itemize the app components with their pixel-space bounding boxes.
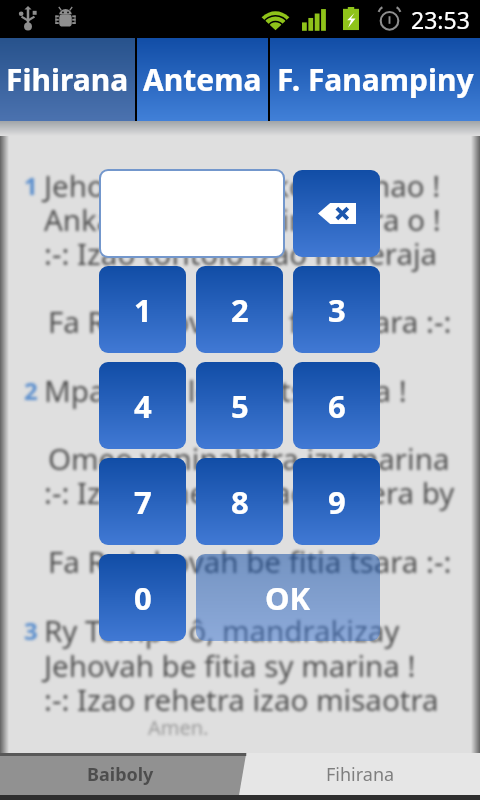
staticText: 6 <box>328 385 346 427</box>
staticText: Baiboly <box>87 762 154 787</box>
button[interactable]: 3 <box>293 266 380 353</box>
button[interactable]: 4 <box>99 362 186 449</box>
button[interactable]: 5 <box>196 362 283 449</box>
staticText: 4 <box>134 385 152 427</box>
staticText: :-: Izao tontolo izao mideraja <box>44 233 438 273</box>
button[interactable]: Fihirana <box>240 753 480 795</box>
staticText: Ankalazao ny heriny tsara o ! <box>44 199 441 239</box>
staticText: OK <box>265 577 311 619</box>
button[interactable]: 8 <box>196 458 283 545</box>
staticText: Omeo voninahitra izy marina <box>48 438 450 478</box>
staticText: 8 <box>231 481 249 523</box>
staticText: 23:53 <box>411 4 470 35</box>
button[interactable]: 1 <box>99 266 186 353</box>
button[interactable]: 7 <box>99 458 186 545</box>
button[interactable]: 6 <box>293 362 380 449</box>
staticText: :-: Izao rehetra izao misaotra <box>44 679 439 719</box>
button[interactable]: Hymn number input <box>101 171 283 256</box>
button[interactable]: Backspace <box>293 170 380 257</box>
staticText: Jehovah ô ! deraiko ny anao ! <box>44 165 441 205</box>
staticText: 2 <box>24 374 38 407</box>
staticText: 5 <box>231 385 249 427</box>
staticText: Amen. <box>148 714 209 741</box>
button[interactable]: F. Fanampiny <box>270 38 480 121</box>
staticText: Ry Tompo ô, mandrakizay <box>44 610 400 650</box>
staticText: 7 <box>134 481 152 523</box>
staticText: 3 <box>24 614 38 647</box>
button[interactable]: Baiboly <box>0 753 240 795</box>
staticText: Fa Ry Jehovah be fitia tsara :-: <box>48 301 452 341</box>
staticText: 2 <box>231 289 249 331</box>
staticText: Fihirana <box>6 59 129 100</box>
button[interactable]: OK <box>196 554 380 641</box>
staticText: Antema <box>143 59 262 100</box>
staticText: 3 <box>328 289 346 331</box>
staticText: 0 <box>134 577 152 619</box>
staticText: 1 <box>24 169 38 202</box>
staticText: 1 <box>134 289 152 331</box>
button[interactable]: 9 <box>293 458 380 545</box>
button[interactable]: Antema <box>137 38 268 121</box>
staticText: Jehovah be fitia sy marina ! <box>44 645 416 685</box>
button[interactable]: Fihirana <box>0 38 135 121</box>
staticText: F. Fanampiny <box>277 59 474 100</box>
staticText: Mpanjaka lehibe tsy toha ! <box>44 370 407 410</box>
staticText: Fihirana <box>326 762 395 787</box>
button[interactable]: 0 <box>99 554 186 641</box>
staticText: Fa Ry Jehovah be fitia tsara :-: <box>48 541 452 581</box>
staticText: 9 <box>328 481 346 523</box>
staticText: :-: Izao rehetra izao midera by <box>44 472 455 512</box>
button[interactable]: 2 <box>196 266 283 353</box>
